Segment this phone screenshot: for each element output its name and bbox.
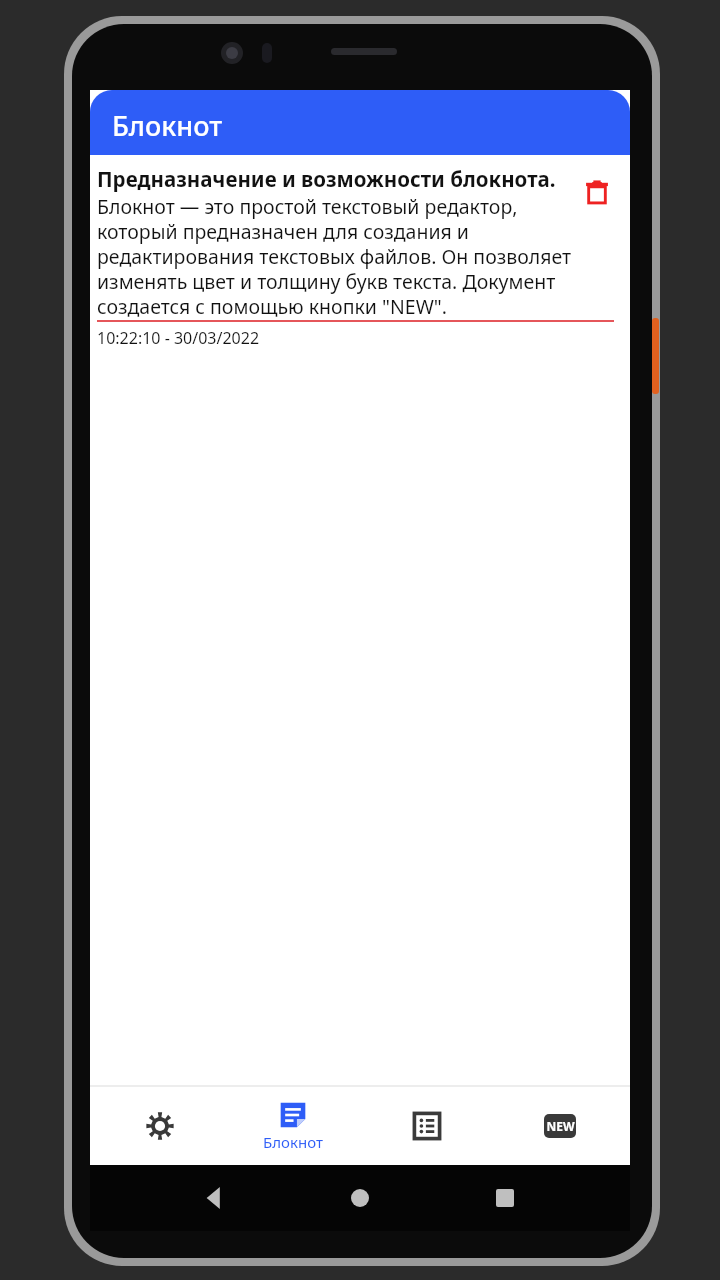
button[interactable]: Delete note [576,171,618,213]
button[interactable]: Recents [485,1178,525,1218]
staticText: Блокнот — это простой текстовый редактор… [97,193,576,320]
staticText: Предназначение и возможности блокнота. [97,165,556,193]
button[interactable]: Блокнот [229,1089,357,1163]
staticText: Блокнот [263,1132,323,1152]
button[interactable]: New note [496,1089,624,1163]
button[interactable]: Home [340,1178,380,1218]
button[interactable]: Settings [96,1089,224,1163]
staticText: NEW [546,1118,575,1134]
staticText: Блокнот [112,107,223,144]
staticText: 10:22:10 - 30/03/2022 [97,327,260,349]
button[interactable]: List [363,1089,491,1163]
button[interactable]: Back [195,1178,235,1218]
